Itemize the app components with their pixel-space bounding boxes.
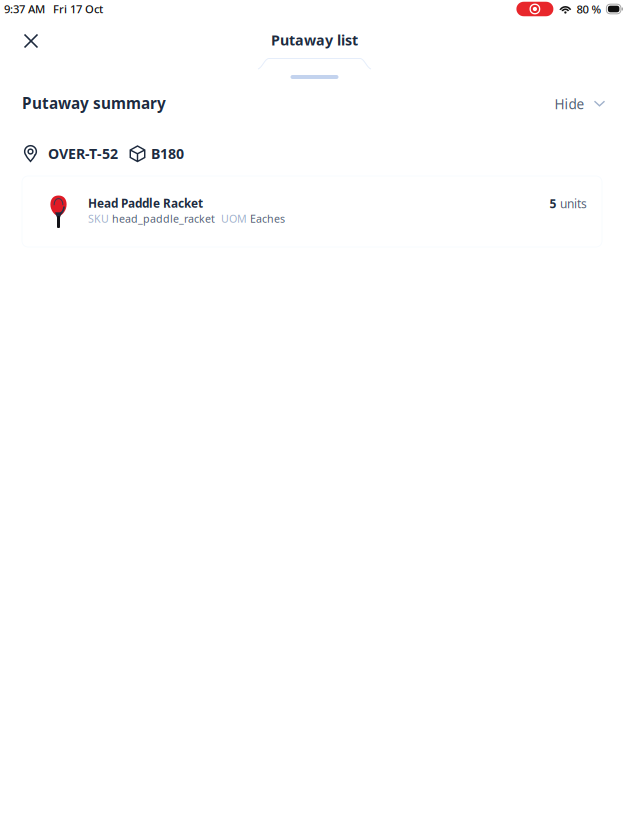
staticText: Head Paddle Racket [88,195,203,211]
staticText: Eaches [250,211,285,226]
staticText: OVER-T-52 [48,144,118,163]
staticText: head_paddle_racket [112,211,215,226]
staticText: 80 % [576,1,601,17]
button[interactable]: Close [11,18,49,58]
staticText: SKU [88,211,109,226]
staticText: units [560,195,587,212]
staticText: 9:37 AM [4,1,45,17]
staticText: Putaway summary [22,93,166,113]
staticText: B180 [151,144,184,163]
staticText: 5 [549,195,556,212]
staticText: Fri 17 Oct [53,1,103,17]
button[interactable]: Hide [554,89,604,119]
button[interactable]: Head Paddle Racket [22,176,602,247]
staticText: UOM [221,211,247,226]
staticText: Putaway list [271,30,358,50]
staticText: Hide [554,95,584,113]
